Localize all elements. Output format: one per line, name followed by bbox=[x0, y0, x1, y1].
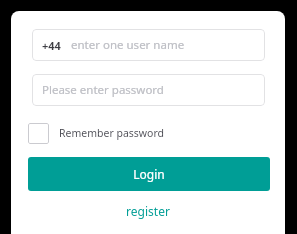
staticText: register bbox=[126, 203, 170, 219]
other: Remember password checkbox bbox=[28, 123, 49, 144]
button[interactable]: Login bbox=[28, 157, 270, 191]
staticText: Login bbox=[133, 166, 165, 182]
button[interactable]: Please enter password bbox=[32, 74, 265, 106]
staticText: +44 bbox=[42, 38, 61, 53]
staticText: Remember password bbox=[59, 126, 165, 140]
button[interactable]: +44 bbox=[32, 29, 265, 61]
staticText: Please enter password bbox=[42, 82, 164, 98]
button[interactable]: Remember password checkbox bbox=[28, 117, 165, 149]
staticText: enter one user name bbox=[71, 37, 185, 53]
button[interactable]: register bbox=[120, 201, 176, 221]
